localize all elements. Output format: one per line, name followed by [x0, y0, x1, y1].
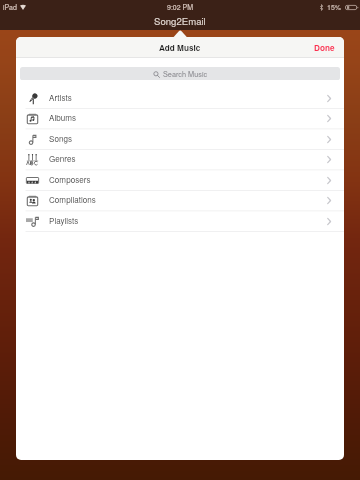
- button[interactable]: Done: [305, 37, 344, 57]
- staticText: 15%: [327, 2, 342, 12]
- staticText: Composers: [49, 174, 91, 186]
- staticText: Artists: [49, 92, 72, 104]
- button[interactable]: Compilations: [16, 190, 344, 211]
- staticText: iPad: [3, 2, 17, 12]
- staticText: Song2Email: [154, 14, 206, 28]
- button[interactable]: Playlists: [16, 211, 344, 232]
- button[interactable]: Artists: [16, 88, 344, 109]
- button[interactable]: Search Music: [20, 67, 340, 80]
- button[interactable]: Composers: [16, 170, 344, 191]
- staticText: Search Music: [163, 69, 208, 79]
- staticText: Genres: [49, 153, 76, 165]
- button[interactable]: Genres: [16, 149, 344, 170]
- staticText: Add Music: [159, 42, 201, 54]
- button[interactable]: Albums: [16, 108, 344, 129]
- staticText: Compilations: [49, 194, 96, 206]
- staticText: Playlists: [49, 215, 79, 227]
- staticText: 9:02 PM: [167, 2, 194, 12]
- staticText: Albums: [49, 112, 76, 124]
- button[interactable]: Songs: [16, 129, 344, 150]
- staticText: Done: [314, 42, 335, 52]
- staticText: Songs: [49, 133, 72, 145]
